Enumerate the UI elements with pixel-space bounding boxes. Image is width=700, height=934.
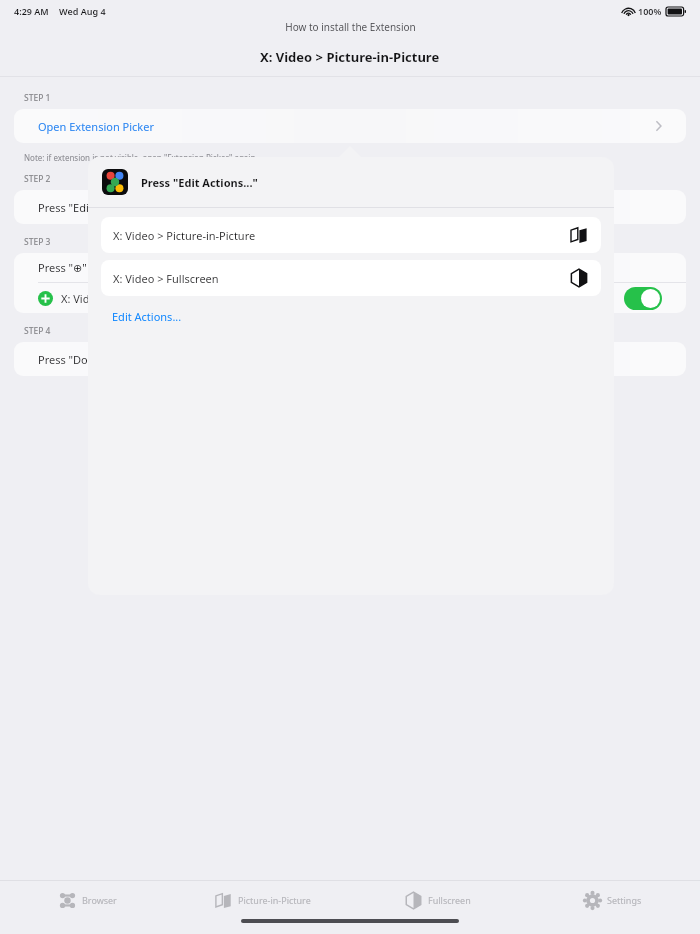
- button[interactable]: Press "⊕" to enable extension: [14, 253, 686, 313]
- staticText: STEP 3: [24, 236, 51, 248]
- staticText: Press "Done": [38, 352, 106, 367]
- button[interactable]: Press "Edit Actions...": [14, 190, 686, 224]
- button[interactable]: X: Video > Fullscreen: [101, 260, 601, 296]
- staticText: X: Video > Picture-in-Picture: [113, 228, 256, 243]
- staticText: Settings: [607, 894, 642, 906]
- staticText: X: Video > Fullscreen: [113, 271, 219, 286]
- staticText: Browser: [82, 894, 117, 906]
- button[interactable]: Browser: [0, 881, 175, 919]
- button[interactable]: Fullscreen: [350, 881, 525, 919]
- staticText: How to install the Extension: [285, 20, 416, 34]
- staticText: X: Video > Picture-in-Picture: [260, 48, 440, 66]
- staticText: Wed Aug 4: [59, 5, 106, 17]
- staticText: STEP 4: [24, 325, 51, 337]
- staticText: Note: if extension is not visible, open …: [24, 152, 256, 163]
- staticText: Fullscreen: [428, 894, 471, 906]
- staticText: STEP 2: [24, 173, 51, 185]
- staticText: STEP 1: [24, 92, 51, 104]
- staticText: 4:29 AM: [14, 5, 49, 17]
- button[interactable]: Toggle extension: [624, 287, 662, 310]
- button[interactable]: Settings: [525, 881, 700, 919]
- staticText: 100%: [638, 5, 662, 17]
- staticText: Edit Actions...: [112, 309, 182, 324]
- staticText: Press "Edit Actions...": [38, 200, 147, 215]
- button[interactable]: Press "Done": [14, 342, 686, 376]
- staticText: Press "⊕" to enable extension: [38, 260, 192, 275]
- button[interactable]: X: Video > Picture-in-Picture: [101, 217, 601, 253]
- button[interactable]: Edit Actions...: [88, 302, 614, 330]
- staticText: X: Video > Picture-in-Picture: [61, 291, 204, 306]
- staticText: Open Extension Picker: [38, 119, 154, 134]
- staticText: Press "Edit Actions...": [141, 175, 258, 190]
- button[interactable]: Picture-in-Picture: [175, 881, 350, 919]
- staticText: Picture-in-Picture: [238, 894, 311, 906]
- button[interactable]: Open Extension Picker: [14, 109, 686, 143]
